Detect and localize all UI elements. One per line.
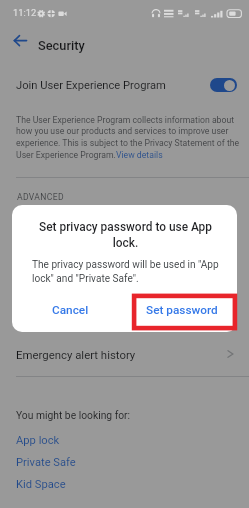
button[interactable]: Set password: [126, 293, 237, 327]
staticText: Set privacy password to use App lock.: [34, 220, 217, 250]
staticText: Private Safe: [16, 456, 76, 469]
staticText: You might be looking for:: [16, 409, 131, 421]
button[interactable]: Private Safe: [0, 453, 249, 472]
button[interactable]: Join User Experience Program: [210, 78, 237, 92]
button[interactable]: Cancel: [15, 293, 126, 327]
staticText: Join User Experience Program: [16, 79, 210, 92]
staticText: ADVANCED: [17, 192, 64, 202]
button[interactable]: App lock: [0, 431, 249, 450]
staticText: Set password: [146, 303, 218, 317]
staticText: Cancel: [52, 303, 89, 317]
staticText: App lock: [16, 434, 60, 447]
button[interactable]: Emergency alert history: [0, 343, 249, 365]
staticText: Emergency alert history: [16, 348, 225, 361]
staticText: 11:12: [13, 7, 37, 18]
button[interactable]: Join User Experience Program: [0, 70, 249, 100]
staticText: Security: [38, 38, 85, 53]
staticText: Kid Space: [16, 478, 66, 491]
staticText: The privacy password will be used in "Ap…: [32, 259, 221, 285]
button[interactable]: Kid Space: [0, 475, 249, 494]
staticText: The User Experience Program collects inf…: [16, 115, 249, 160]
button[interactable]: Back: [0, 26, 38, 64]
